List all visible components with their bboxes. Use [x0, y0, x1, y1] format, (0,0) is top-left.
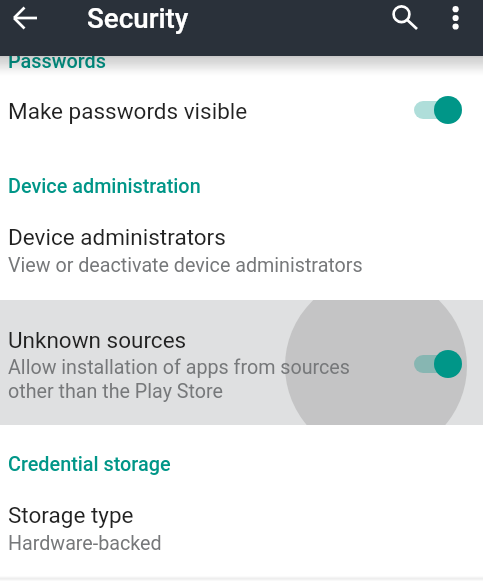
button[interactable]: Navigate up: [6, 4, 42, 40]
button[interactable]: Toggle, on: [413, 95, 463, 125]
staticText: View or deactivate device administrators: [8, 254, 363, 277]
staticText: Security: [87, 2, 189, 35]
staticText: Unknown sources: [8, 327, 187, 353]
button[interactable]: Storage type: [0, 490, 483, 576]
staticText: Credential storage: [8, 453, 171, 476]
staticText: Allow installation of apps from sources: [8, 356, 350, 379]
button[interactable]: Search: [388, 2, 420, 34]
button[interactable]: Make passwords visible: [0, 76, 483, 146]
staticText: Passwords: [8, 50, 106, 73]
staticText: other than the Play Store: [8, 380, 223, 403]
button[interactable]: Toggle, on: [413, 349, 463, 379]
staticText: Device administrators: [8, 224, 226, 250]
staticText: Device administration: [8, 175, 201, 198]
button[interactable]: More options: [446, 2, 466, 22]
staticText: Hardware-backed: [8, 532, 162, 555]
staticText: Make passwords visible: [8, 98, 248, 124]
button[interactable]: Device administrators: [0, 212, 483, 300]
button[interactable]: Unknown sources: [0, 300, 483, 425]
staticText: Storage type: [8, 502, 134, 528]
